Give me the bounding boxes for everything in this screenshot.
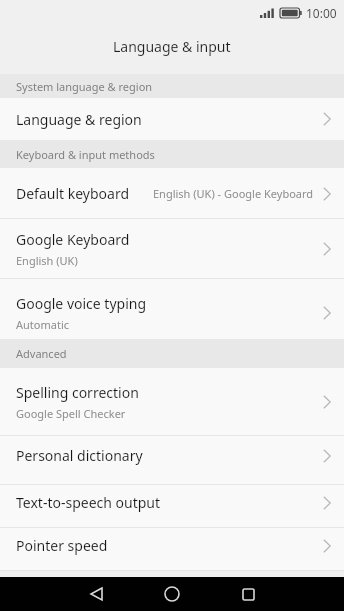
staticText: System language & region (16, 79, 153, 94)
button[interactable]: Google Keyboard (0, 219, 344, 279)
staticText: English (UK) - Google Keyboard (153, 186, 314, 201)
button[interactable]: Google voice typing (0, 279, 344, 339)
staticText: Keyboard & input methods (16, 147, 155, 162)
staticText: Google Spell Checker (16, 406, 126, 421)
button[interactable]: Personal dictionary (0, 436, 344, 485)
staticText: English (UK) (16, 253, 78, 268)
staticText: Advanced (16, 346, 67, 361)
staticText: Text-to-speech output (16, 493, 161, 512)
staticText: Language & region (16, 110, 142, 129)
staticText: Personal dictionary (16, 446, 143, 465)
button[interactable] (210, 577, 286, 611)
staticText: Pointer speed (16, 536, 108, 555)
staticText: Default keyboard (16, 184, 130, 203)
staticText: Automatic (16, 317, 69, 332)
staticText: Google voice typing (16, 294, 147, 313)
staticText: Spelling correction (16, 383, 139, 402)
button[interactable]: Default keyboard (0, 168, 344, 219)
button[interactable]: Spelling correction (0, 368, 344, 436)
button[interactable]: Pointer speed (0, 528, 344, 571)
button[interactable] (58, 577, 134, 611)
staticText: Language & input (113, 37, 231, 56)
button[interactable]: Text-to-speech output (0, 485, 344, 528)
staticText: Google Keyboard (16, 230, 130, 249)
staticText: 10:00 (306, 5, 337, 21)
button[interactable]: Language & region (0, 98, 344, 140)
button[interactable] (134, 577, 210, 611)
